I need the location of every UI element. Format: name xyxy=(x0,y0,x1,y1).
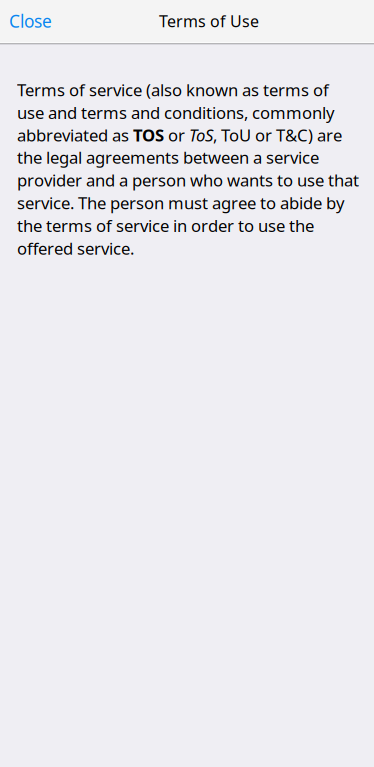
staticText: Terms of Use xyxy=(159,10,259,32)
staticText: the terms of service in order to use the xyxy=(17,214,314,237)
staticText: provider and a person who wants to use t… xyxy=(17,169,359,191)
staticText: abbreviated as TOS or ToS, ToU or T&C) a… xyxy=(17,124,342,146)
staticText: the legal agreements between a service xyxy=(17,146,319,169)
staticText: Terms of service (also known as terms of xyxy=(17,78,329,101)
staticText: service. The person must agree to abide … xyxy=(17,191,345,214)
staticText: offered service. xyxy=(17,237,134,259)
staticText: Close xyxy=(9,9,52,33)
button[interactable]: Close xyxy=(0,0,64,42)
staticText: use and terms and conditions, commonly xyxy=(17,101,335,124)
